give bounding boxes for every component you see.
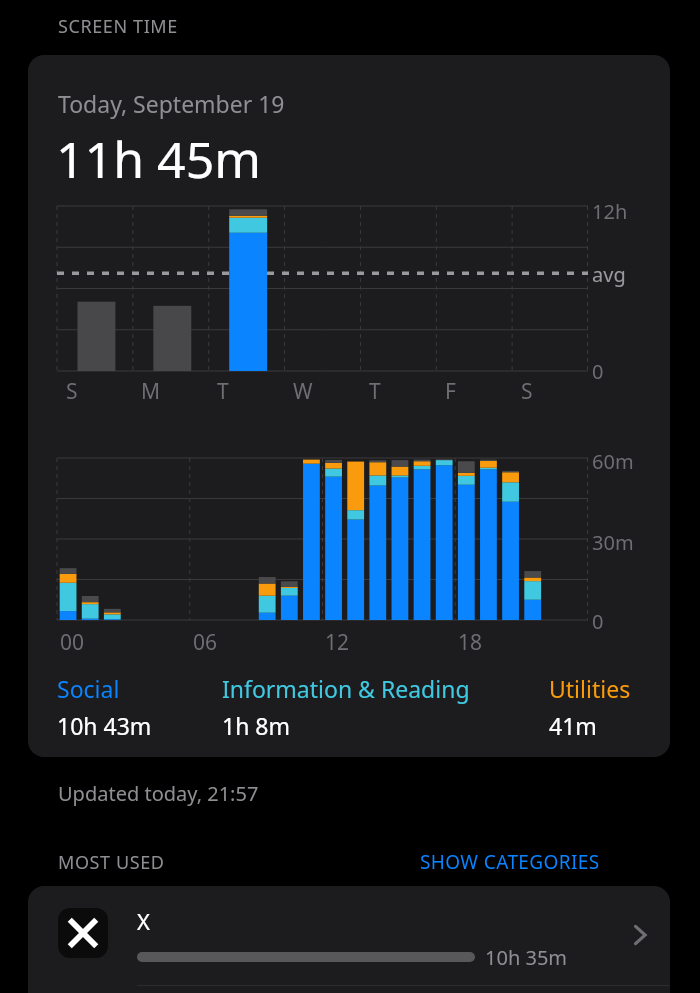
staticText: T <box>369 377 381 406</box>
staticText: Utilities <box>549 673 631 704</box>
staticText: 41m <box>549 710 597 741</box>
staticText: 30m <box>592 529 634 556</box>
staticText: T <box>217 377 229 406</box>
staticText: W <box>293 377 313 406</box>
staticText: 00 <box>60 628 85 657</box>
staticText: SHOW CATEGORIES <box>420 849 600 875</box>
button[interactable]: SHOW CATEGORIES <box>420 845 600 879</box>
staticText: 10h 35m <box>485 944 568 971</box>
staticText: F <box>445 377 456 406</box>
button[interactable]: X <box>28 886 670 985</box>
staticText: 11h 45m <box>56 125 262 193</box>
staticText: MOST USED <box>58 850 165 875</box>
other: Open X details <box>624 919 656 951</box>
staticText: 12h <box>592 198 628 225</box>
staticText: 10h 43m <box>57 710 152 741</box>
button[interactable]: Today, September 19 <box>28 55 670 757</box>
staticText: avg <box>592 261 626 288</box>
staticText: 60m <box>592 448 634 475</box>
staticText: 0 <box>592 608 604 635</box>
staticText: 18 <box>458 628 483 657</box>
staticText: Today, September 19 <box>58 88 285 119</box>
staticText: Social <box>57 673 120 704</box>
staticText: 12 <box>325 628 350 657</box>
staticText: Information & Reading <box>222 673 470 704</box>
staticText: SCREEN TIME <box>58 14 178 39</box>
staticText: S <box>66 377 78 406</box>
staticText: M <box>141 377 161 406</box>
staticText: 06 <box>193 628 218 657</box>
staticText: Updated today, 21:57 <box>58 780 259 807</box>
staticText: 0 <box>592 358 604 385</box>
staticText: 1h 8m <box>222 710 291 741</box>
staticText: S <box>521 377 533 406</box>
staticText: X <box>137 906 150 936</box>
